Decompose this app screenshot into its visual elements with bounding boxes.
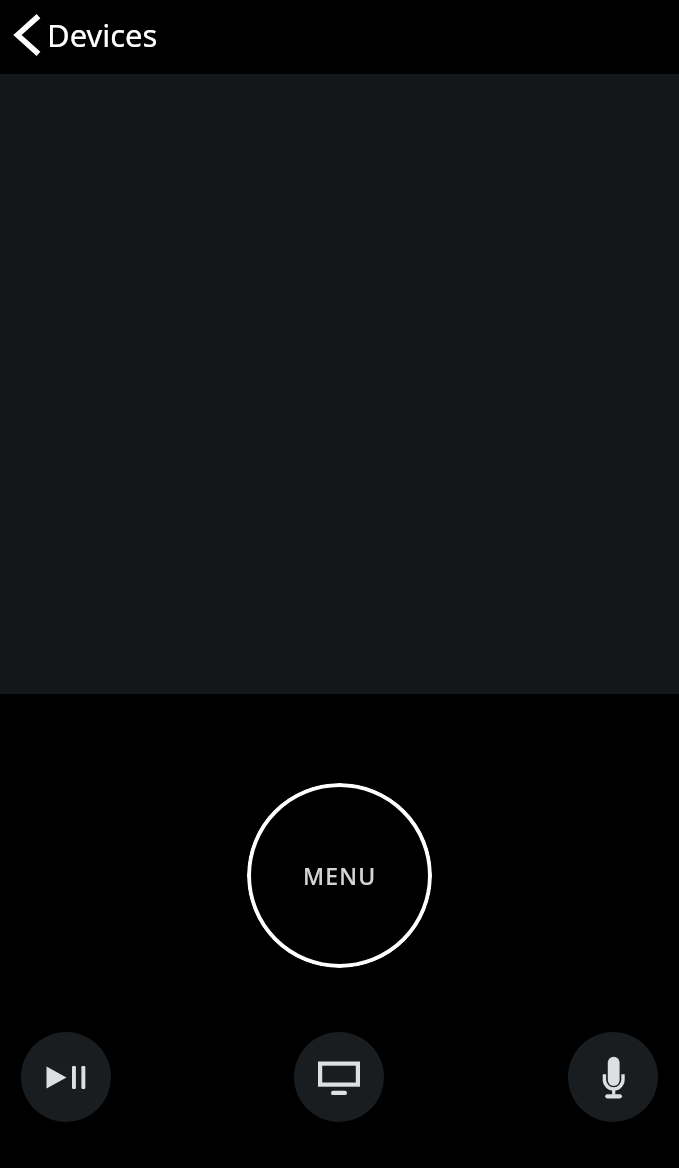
button[interactable]: Screen xyxy=(294,1032,384,1122)
button[interactable]: Devices xyxy=(0,0,170,74)
staticText: MENU xyxy=(303,860,377,891)
button[interactable]: Play Pause xyxy=(21,1032,111,1122)
button[interactable]: MENU xyxy=(247,783,432,968)
staticText: Devices xyxy=(47,14,158,56)
button[interactable]: Voice search xyxy=(568,1032,658,1122)
